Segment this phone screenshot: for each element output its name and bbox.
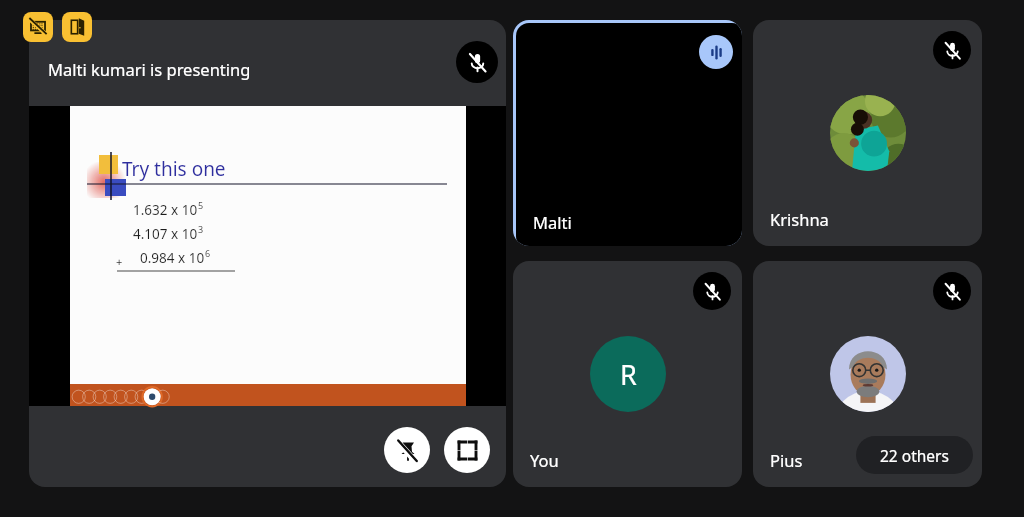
- button[interactable]: Microphone off: [456, 41, 498, 83]
- staticText: Malti kumari is presenting: [48, 58, 251, 80]
- button[interactable]: Unpin: [384, 427, 430, 473]
- staticText: Try this one: [122, 156, 226, 182]
- button[interactable]: Krishna: [753, 20, 982, 246]
- staticText: Pius: [770, 449, 803, 471]
- staticText: +: [116, 254, 123, 269]
- staticText: 3: [198, 223, 204, 235]
- staticText: 5: [198, 199, 204, 211]
- button[interactable]: Microphone off: [933, 272, 971, 310]
- button[interactable]: Microphone off: [933, 31, 971, 69]
- button[interactable]: Screen sharing blocked: [23, 12, 53, 42]
- button[interactable]: Pius: [753, 261, 982, 487]
- button[interactable]: Leave call: [62, 12, 92, 42]
- button[interactable]: 22 others: [856, 436, 973, 474]
- button[interactable]: Malti: [513, 20, 742, 246]
- button[interactable]: Malti kumari is presenting: [29, 20, 506, 487]
- button[interactable]: Speaking: [699, 35, 733, 69]
- button[interactable]: R: [513, 261, 742, 487]
- staticText: 0.984 x 10: [140, 249, 205, 267]
- staticText: You: [530, 449, 559, 471]
- staticText: 6: [205, 247, 211, 259]
- staticText: 4.107 x 10: [133, 225, 198, 243]
- staticText: 1.632 x 10: [133, 201, 198, 219]
- staticText: R: [620, 356, 637, 393]
- button[interactable]: Full screen: [444, 427, 490, 473]
- staticText: Krishna: [770, 208, 829, 230]
- button[interactable]: Microphone off: [693, 272, 731, 310]
- staticText: 22 others: [880, 445, 949, 466]
- staticText: Malti: [533, 211, 572, 233]
